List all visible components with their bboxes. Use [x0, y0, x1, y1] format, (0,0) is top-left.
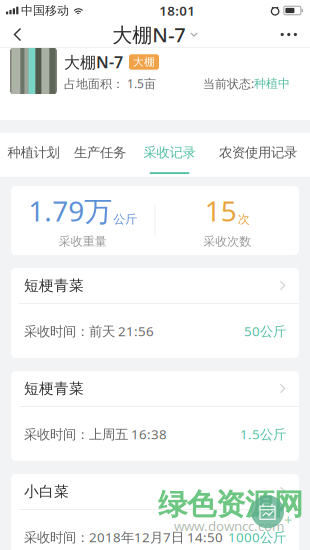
staticText: 占地面积： 1.5亩 [64, 75, 156, 91]
staticText: 短梗青菜 [24, 276, 84, 294]
staticText: 15 [205, 192, 237, 229]
button[interactable]: 生产任务 [67, 133, 133, 178]
staticText: 中国移动 [21, 3, 69, 18]
staticText: 公斤 [113, 212, 137, 227]
button[interactable]: 短梗青菜 [0, 268, 310, 358]
staticText: 小白菜 [24, 482, 69, 500]
staticText: 种植计划 [7, 144, 59, 161]
staticText: 采收记录 [143, 144, 195, 161]
button[interactable]: 农资使用记录 [206, 133, 310, 178]
staticText: 短梗青菜 [24, 379, 84, 397]
staticText: 1.5公斤 [240, 425, 286, 443]
staticText: 采收次数 [203, 234, 251, 249]
staticText: 1.79万 [28, 192, 112, 229]
staticText: 18:01 [159, 2, 195, 19]
staticText: 1000公斤 [228, 528, 286, 546]
staticText: 采收时间：2018年12月7日 14:50 [24, 528, 223, 546]
staticText: 绿色资源网 [158, 486, 303, 522]
staticText: 50公斤 [244, 322, 286, 340]
button[interactable]: Back [0, 20, 36, 48]
staticText: 大棚N-7 [64, 51, 123, 73]
staticText: 采收时间：上周五 16:38 [24, 425, 167, 443]
staticText: 采收时间：前天 21:56 [24, 322, 154, 340]
button[interactable]: 种植计划 [0, 133, 67, 178]
button[interactable]: 小白菜 [0, 474, 310, 550]
staticText: 当前状态: [203, 75, 254, 91]
staticText: 大棚 [133, 55, 155, 68]
staticText: www.downcc.com [174, 517, 284, 535]
button[interactable]: 采收记录 [133, 133, 206, 178]
staticText: 大棚N-7 [112, 21, 185, 48]
staticText: 种植中 [254, 76, 290, 91]
staticText: 农资使用记录 [219, 144, 297, 161]
button[interactable]: 短梗青菜 [0, 371, 310, 461]
staticText: 生产任务 [74, 144, 126, 161]
staticText: 次 [238, 212, 250, 227]
staticText: 采收重量 [59, 234, 107, 249]
button[interactable]: More options [268, 21, 310, 48]
staticText: + [284, 510, 292, 529]
